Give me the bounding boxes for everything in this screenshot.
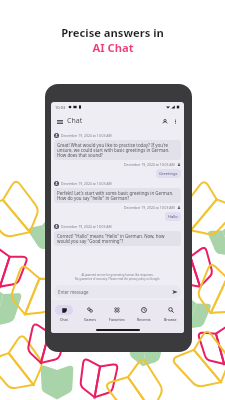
- staticText: 10:03: [55, 105, 66, 110]
- button[interactable]: Games: [77, 300, 103, 326]
- button[interactable]: Hallo: [165, 212, 181, 221]
- staticText: December 19, 2024 at 10:03 AM: [124, 162, 175, 167]
- staticText: Favorites: [109, 317, 125, 322]
- staticText: Great! What would you like to practice t…: [57, 142, 178, 158]
- staticText: Games: [84, 317, 96, 322]
- staticText: Precise answers in: [61, 25, 164, 40]
- staticText: Enter message: [58, 289, 89, 295]
- button[interactable]: Favorites: [103, 300, 130, 326]
- button[interactable]: More options: [171, 117, 180, 126]
- staticText: Greetings: [159, 171, 178, 176]
- staticText: Perfekt! Let's start with some basic gre…: [57, 190, 178, 201]
- button[interactable]: Menu: [55, 117, 64, 126]
- staticText: December 19, 2024 at 10:03 AM: [61, 181, 112, 186]
- button[interactable]: Browse: [157, 300, 184, 326]
- staticText: Chat: [67, 116, 83, 126]
- staticText: AI-powered service for generating human-…: [54, 273, 181, 280]
- staticText: Browse: [164, 317, 177, 322]
- staticText: Chat: [60, 317, 68, 322]
- staticText: AI Chat: [92, 40, 134, 55]
- staticText: Recents: [137, 317, 151, 322]
- button[interactable]: Chat: [51, 300, 77, 326]
- staticText: Correct! "Hallo" means "Hello" in German…: [57, 233, 178, 244]
- staticText: December 19, 2024 at 10:03 AM: [124, 205, 175, 210]
- button[interactable]: Enter message: [54, 285, 181, 298]
- button[interactable]: Greetings: [156, 169, 181, 178]
- button[interactable]: Account: [160, 117, 169, 126]
- staticText: December 19, 2024 at 10:03 AM: [61, 224, 112, 229]
- button[interactable]: Recents: [130, 300, 157, 326]
- staticText: December 19, 2024 at 10:03 AM: [61, 133, 112, 138]
- staticText: Hallo: [168, 214, 178, 219]
